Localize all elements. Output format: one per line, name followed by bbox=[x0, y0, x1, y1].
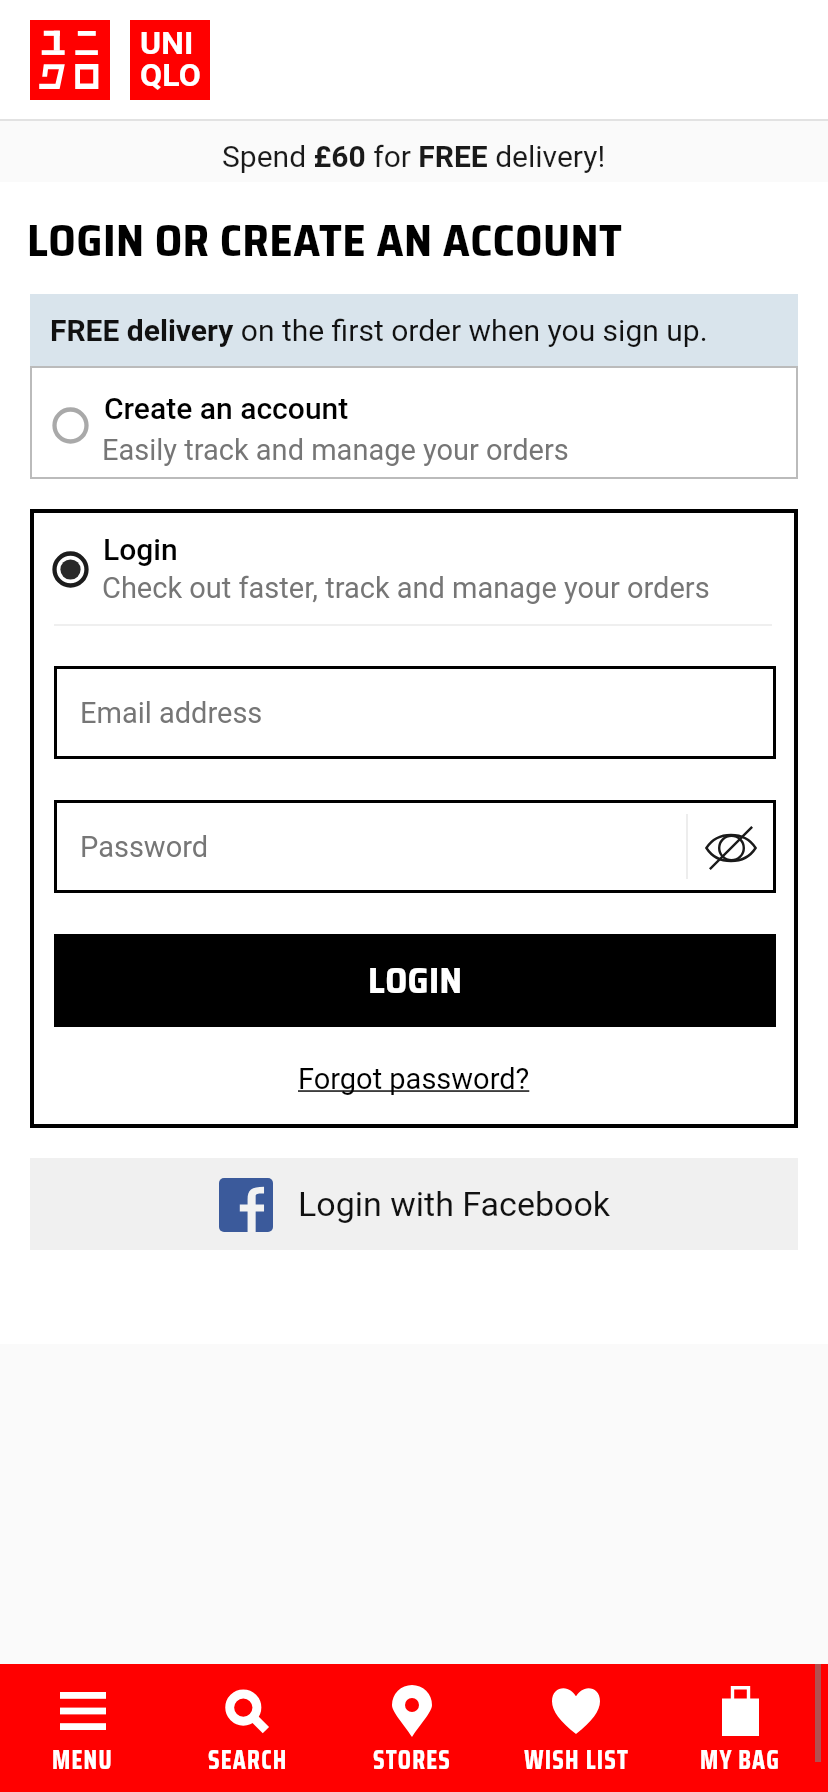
staticText: WISH LIST bbox=[524, 1739, 629, 1780]
button[interactable]: STORES bbox=[330, 1664, 494, 1792]
staticText: UNI bbox=[140, 24, 194, 62]
button[interactable]: Create an account bbox=[30, 366, 798, 479]
staticText: LOGIN bbox=[368, 952, 463, 1009]
staticText: Login bbox=[103, 532, 178, 567]
staticText: STORES bbox=[373, 1739, 452, 1780]
button[interactable]: MENU bbox=[0, 1664, 165, 1792]
staticText: Spend £60 for FREE delivery! bbox=[222, 139, 606, 174]
staticText: MY BAG bbox=[700, 1739, 781, 1780]
button[interactable]: Password bbox=[54, 800, 776, 893]
button[interactable]: LOGIN bbox=[54, 934, 776, 1027]
staticText: LOGIN OR CREATE AN ACCOUNT bbox=[27, 205, 623, 276]
button[interactable]: Show password bbox=[686, 800, 776, 893]
staticText: SEARCH bbox=[208, 1739, 288, 1780]
staticText: QLO bbox=[140, 56, 202, 94]
staticText: Easily track and manage your orders bbox=[102, 433, 569, 467]
staticText: Email address bbox=[80, 696, 263, 730]
button[interactable]: Login with Facebook bbox=[30, 1158, 798, 1250]
staticText: MENU bbox=[52, 1739, 113, 1780]
button[interactable]: Email address bbox=[54, 666, 776, 759]
button[interactable]: Login bbox=[30, 509, 798, 619]
button[interactable]: Forgot password? bbox=[292, 1058, 536, 1100]
staticText: Login with Facebook bbox=[298, 1184, 611, 1224]
staticText: Create an account bbox=[104, 391, 349, 426]
staticText: Check out faster, track and manage your … bbox=[102, 571, 710, 605]
button[interactable]: WISH LIST bbox=[494, 1664, 658, 1792]
staticText: FREE delivery on the first order when yo… bbox=[50, 313, 708, 348]
button[interactable]: SEARCH bbox=[165, 1664, 330, 1792]
button[interactable]: MY BAG bbox=[658, 1664, 822, 1792]
staticText: Password bbox=[80, 830, 209, 864]
